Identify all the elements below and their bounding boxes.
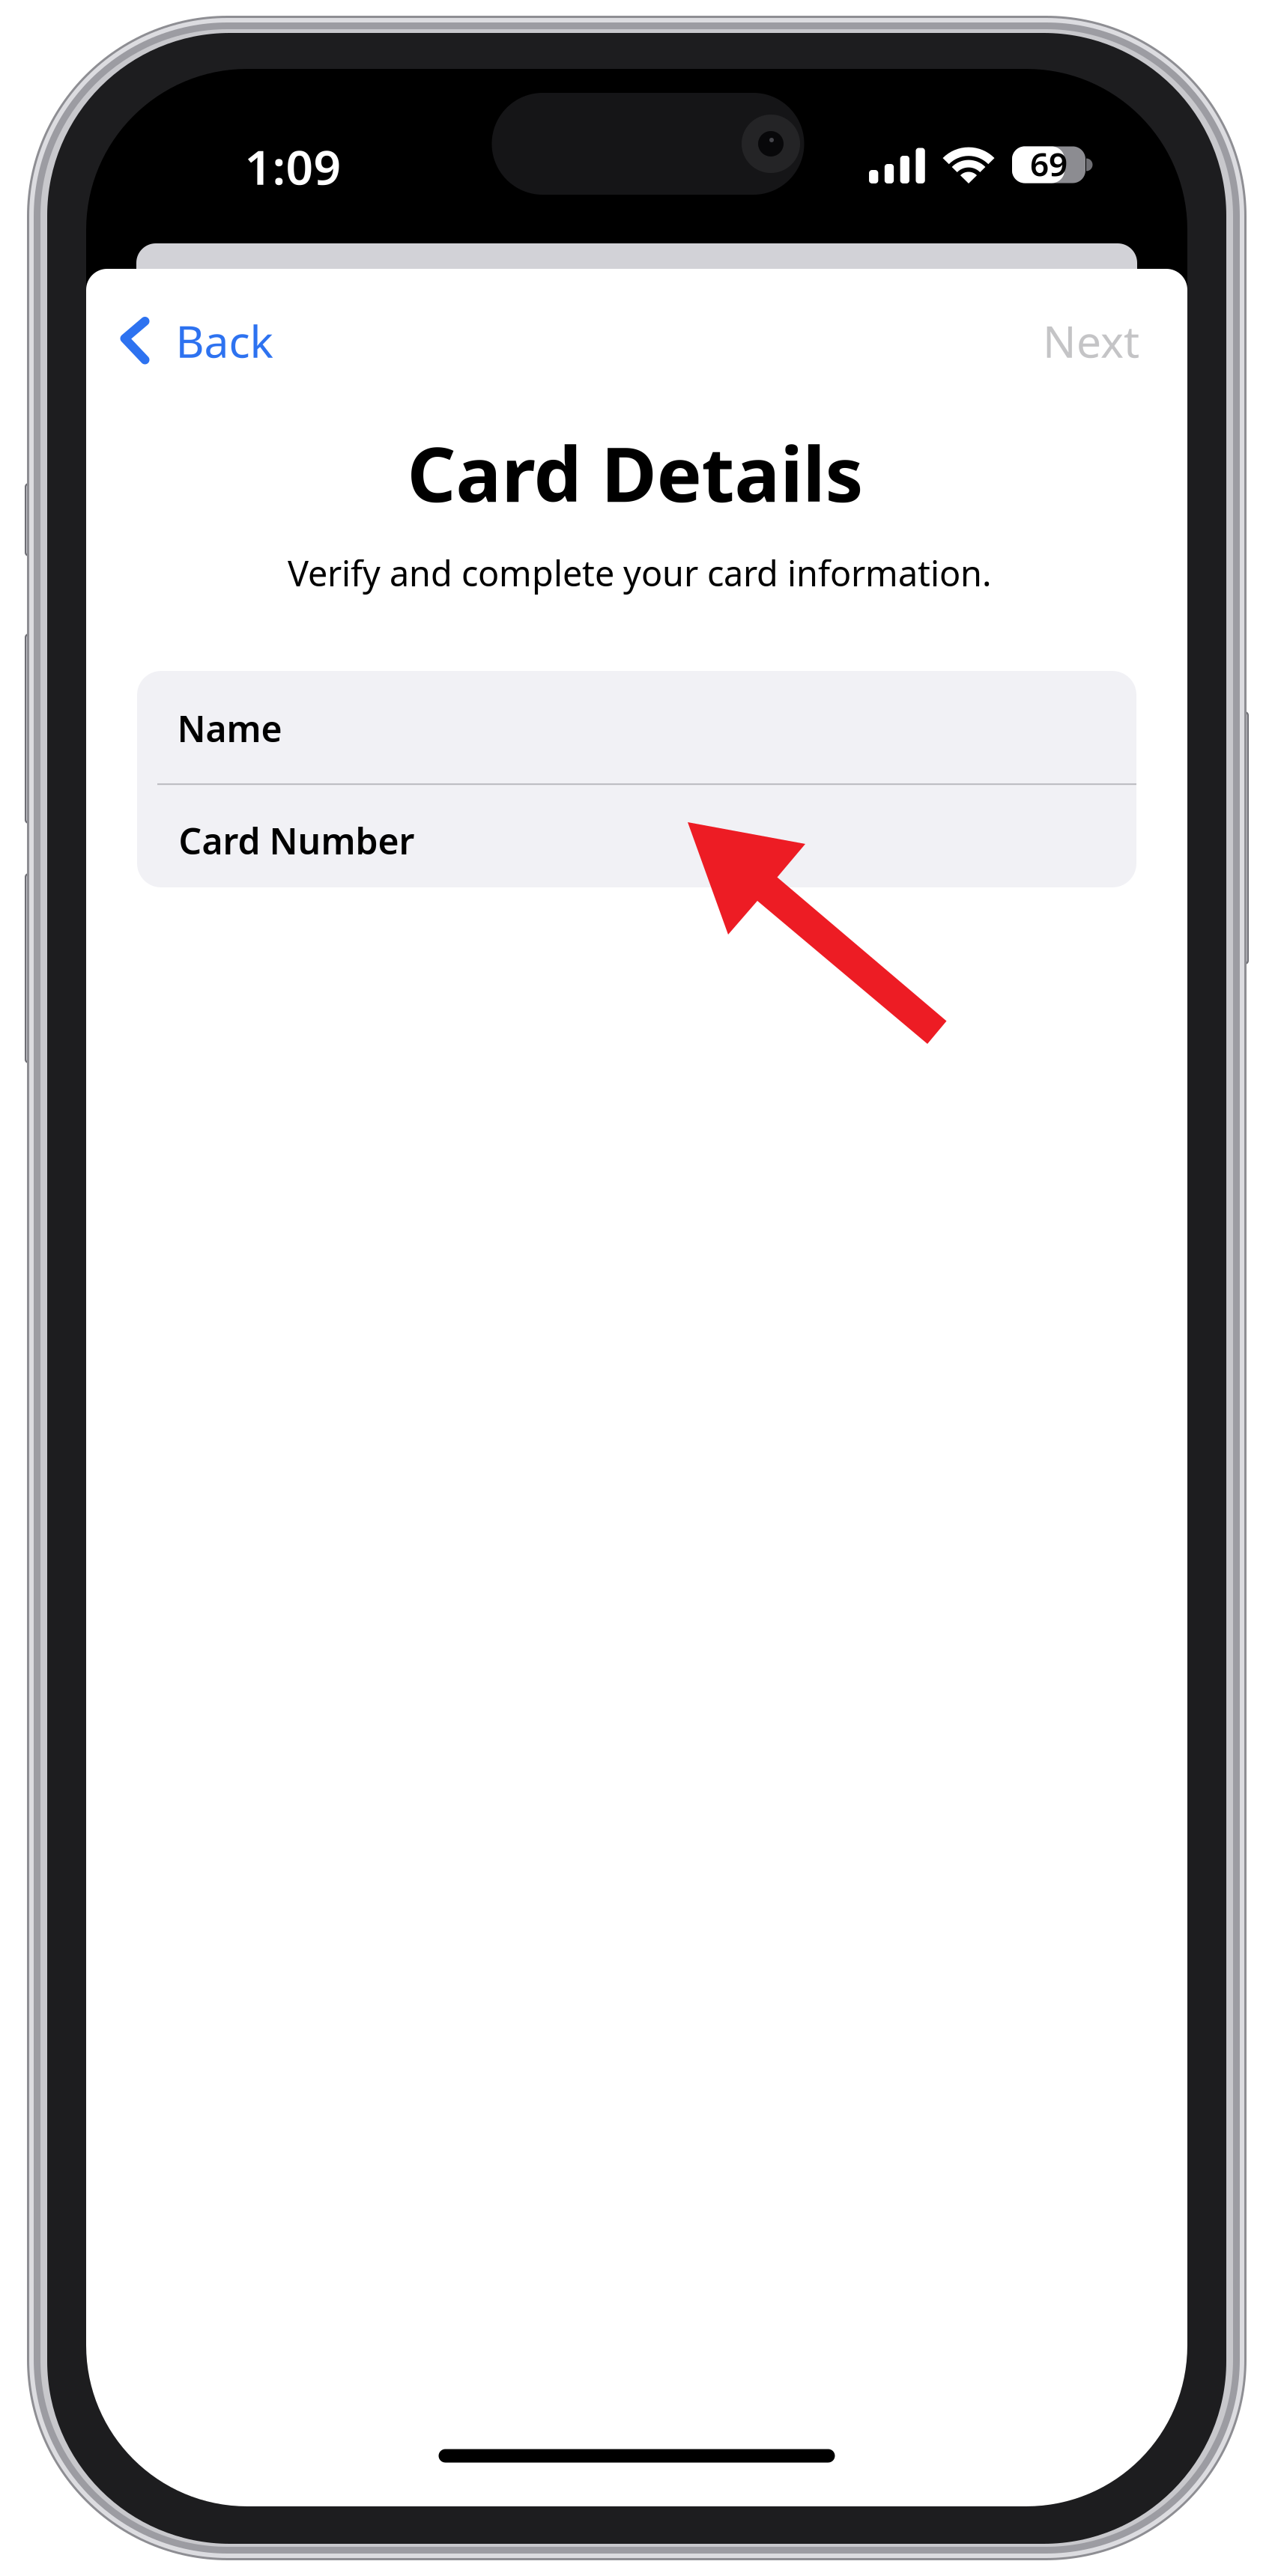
- staticText: Next: [1043, 312, 1139, 370]
- staticText: Back: [176, 312, 273, 370]
- button[interactable]: Back: [105, 300, 288, 382]
- staticText: Card Number: [179, 817, 415, 864]
- button[interactable]: Name: [137, 671, 1136, 784]
- staticText: 69: [1030, 142, 1067, 185]
- staticText: Verify and complete your card informatio…: [288, 550, 992, 596]
- staticText: Card Details: [407, 422, 863, 523]
- staticText: 1:09: [245, 134, 341, 198]
- staticText: Name: [177, 704, 282, 752]
- button[interactable]: Card Number: [137, 784, 1136, 887]
- button[interactable]: Next: [1022, 289, 1160, 392]
